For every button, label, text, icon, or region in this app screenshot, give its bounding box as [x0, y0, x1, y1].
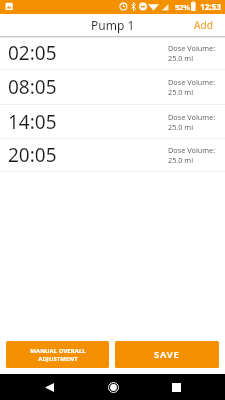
staticText: Add	[194, 18, 214, 32]
button[interactable]: Back	[38, 376, 60, 398]
button[interactable]: Home	[102, 376, 124, 398]
button[interactable]: 20:05	[0, 139, 225, 171]
staticText: 92%	[175, 2, 190, 12]
staticText: 25.0 ml	[168, 53, 194, 63]
staticText: Pump 1	[91, 17, 135, 33]
staticText: 25.0 ml	[168, 122, 194, 132]
button[interactable]: Add	[183, 14, 225, 36]
staticText: Dose Volume:	[168, 43, 216, 53]
staticText: Dose Volume:	[168, 112, 216, 122]
staticText: MANUAL OVERALL ADJUSTMENT	[30, 347, 86, 362]
staticText: Dose Volume:	[168, 145, 216, 155]
staticText: 20:05	[8, 142, 57, 168]
button[interactable]: 14:05	[0, 105, 225, 138]
button[interactable]: 02:05	[0, 37, 225, 69]
staticText: 25.0 ml	[168, 87, 194, 97]
staticText: 14:05	[8, 109, 57, 135]
button[interactable]: 08:05	[0, 70, 225, 104]
staticText: 12:53	[200, 1, 221, 13]
staticText: Dose Volume:	[168, 77, 216, 87]
button[interactable]: MANUAL OVERALL ADJUSTMENT	[6, 341, 109, 368]
button[interactable]: Recent apps	[165, 376, 187, 398]
staticText: SAVE	[154, 348, 180, 361]
button[interactable]: SAVE	[115, 341, 219, 368]
staticText: 25.0 ml	[168, 155, 194, 165]
staticText: 02:05	[8, 40, 57, 66]
staticText: 08:05	[8, 74, 57, 100]
